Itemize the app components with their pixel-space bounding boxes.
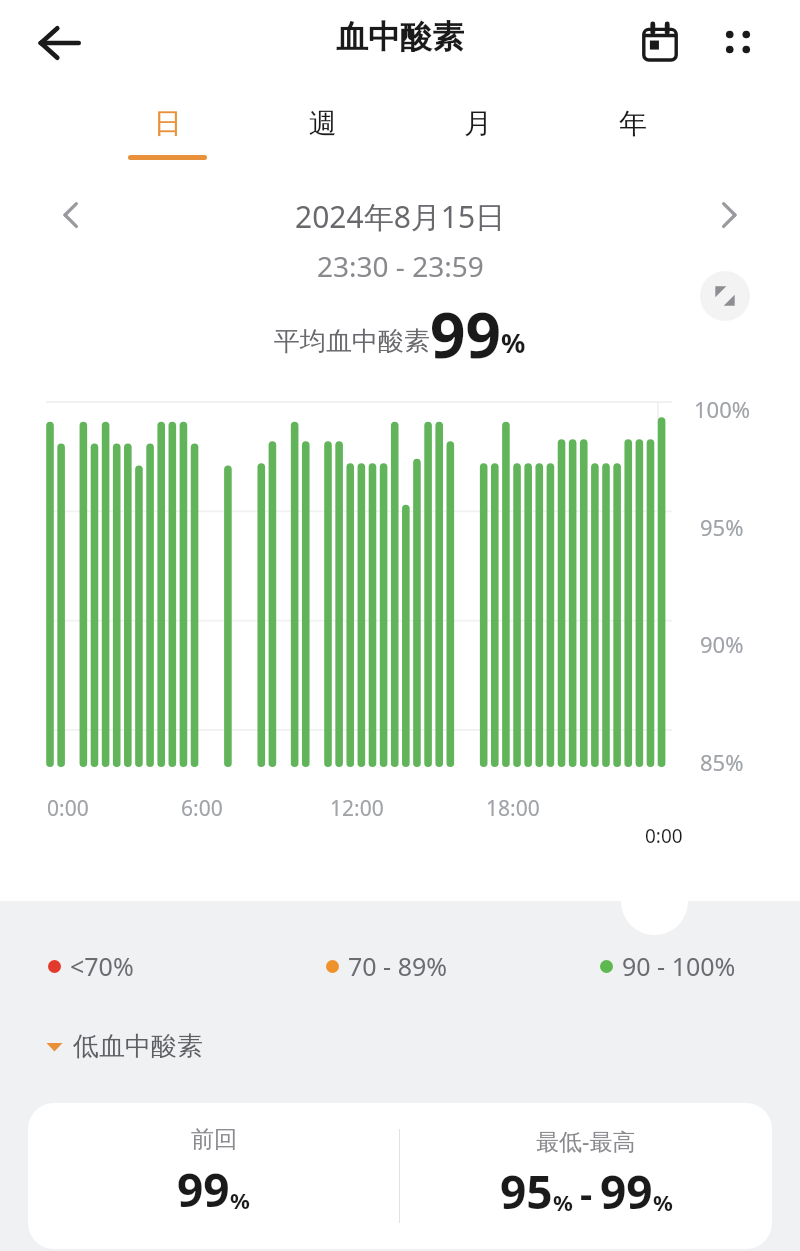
button[interactable]: 70 - 89% (326, 949, 448, 983)
staticText: 90% (700, 629, 744, 659)
staticText: 23:30 - 23:59 (317, 247, 484, 278)
staticText: 血中酸素 (336, 17, 464, 57)
staticText: 99 (177, 1158, 230, 1221)
button[interactable]: Expand chart (700, 271, 750, 321)
button[interactable]: 日 (90, 88, 245, 180)
staticText: 6:00 (181, 794, 223, 823)
staticText: 100% (694, 394, 751, 424)
staticText: % (501, 324, 526, 361)
staticText: 95% (700, 512, 744, 542)
button[interactable]: 週 (245, 88, 400, 180)
staticText: 低血中酸素 (73, 1030, 203, 1063)
staticText: 12:00 (330, 794, 384, 823)
staticText: 2024年8月15日 (295, 196, 506, 237)
staticText: <70% (70, 949, 134, 983)
button[interactable]: Back (24, 8, 94, 78)
staticText: 99 (600, 1160, 653, 1223)
staticText: 70 - 89% (348, 949, 448, 983)
staticText: 85% (700, 747, 744, 777)
staticText: 0:00 (645, 823, 683, 849)
button[interactable]: 低血中酸素 (46, 1025, 203, 1067)
staticText: 18:00 (486, 794, 540, 823)
staticText: 前回 (191, 1125, 237, 1154)
staticText: - (580, 1167, 593, 1219)
button[interactable]: Calendar (626, 8, 694, 76)
button[interactable]: Previous day (42, 186, 100, 244)
button[interactable]: 前回 (28, 1103, 772, 1249)
button[interactable]: Next day (700, 186, 758, 244)
staticText: 95 (500, 1160, 553, 1223)
staticText: 週 (309, 106, 337, 141)
staticText: 年 (619, 106, 647, 141)
button[interactable]: 90 - 100% (600, 949, 736, 983)
staticText: 日 (154, 106, 182, 141)
button[interactable]: <70% (48, 949, 134, 983)
staticText: 99 (430, 292, 501, 370)
staticText: 0:00 (47, 794, 89, 823)
staticText: % (653, 1187, 673, 1217)
button[interactable]: More options (704, 8, 772, 76)
staticText: % (553, 1187, 573, 1217)
button[interactable]: 月 (400, 88, 555, 180)
staticText: 月 (464, 106, 492, 141)
staticText: 平均血中酸素 (274, 325, 430, 358)
button[interactable]: 年 (555, 88, 710, 180)
staticText: % (230, 1185, 250, 1215)
staticText: 最低-最高 (536, 1125, 636, 1156)
staticText: 90 - 100% (622, 949, 736, 983)
